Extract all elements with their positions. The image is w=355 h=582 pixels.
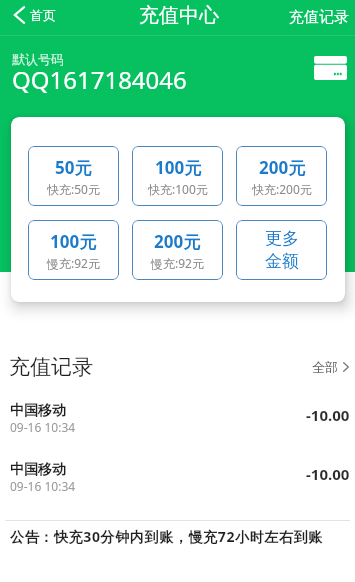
staticText: 快充:100元 bbox=[148, 181, 208, 197]
staticText: 首页 bbox=[30, 7, 56, 23]
button[interactable]: 50元 bbox=[28, 146, 119, 206]
staticText: 50元 bbox=[55, 156, 92, 179]
staticText: 快充:200元 bbox=[252, 181, 312, 197]
staticText: 200元 bbox=[154, 230, 201, 253]
staticText: 100元 bbox=[155, 156, 202, 179]
button[interactable]: 全部 bbox=[304, 353, 355, 381]
staticText: QQ1617184046 bbox=[12, 63, 187, 96]
staticText: 全部 bbox=[312, 359, 338, 375]
staticText: 100元 bbox=[50, 230, 97, 253]
staticText: 公告：快充30分钟内到账，慢充72小时左右到账 bbox=[10, 527, 323, 546]
staticText: 金额 bbox=[265, 251, 299, 272]
staticText: 09-16 10:34 bbox=[10, 478, 76, 494]
button[interactable]: 中国移动 bbox=[0, 461, 355, 495]
staticText: 更多 bbox=[265, 228, 299, 249]
button[interactable]: 首页 bbox=[0, 3, 66, 27]
button[interactable]: 100元 bbox=[28, 220, 119, 280]
staticText: 200元 bbox=[259, 156, 306, 179]
staticText: 09-16 10:34 bbox=[10, 419, 76, 435]
staticText: 中国移动 bbox=[10, 402, 66, 420]
staticText: 充值记录 bbox=[9, 354, 93, 380]
staticText: 中国移动 bbox=[10, 461, 66, 479]
button[interactable]: 中国移动 bbox=[0, 402, 355, 436]
staticText: 默认号码 bbox=[12, 51, 64, 67]
button[interactable]: 100元 bbox=[132, 146, 223, 206]
button[interactable]: 200元 bbox=[132, 220, 223, 280]
staticText: 慢充:92元 bbox=[151, 255, 204, 271]
button[interactable]: 更多 bbox=[236, 220, 327, 280]
button[interactable]: 200元 bbox=[236, 146, 327, 206]
button[interactable]: Bank card bbox=[314, 56, 347, 80]
staticText: -10.00 bbox=[306, 405, 350, 425]
staticText: 快充:50元 bbox=[47, 181, 100, 197]
staticText: -10.00 bbox=[306, 464, 350, 484]
staticText: 慢充:92元 bbox=[47, 255, 100, 271]
button[interactable]: 充值记录 bbox=[279, 2, 355, 31]
staticText: 充值中心 bbox=[139, 3, 219, 28]
